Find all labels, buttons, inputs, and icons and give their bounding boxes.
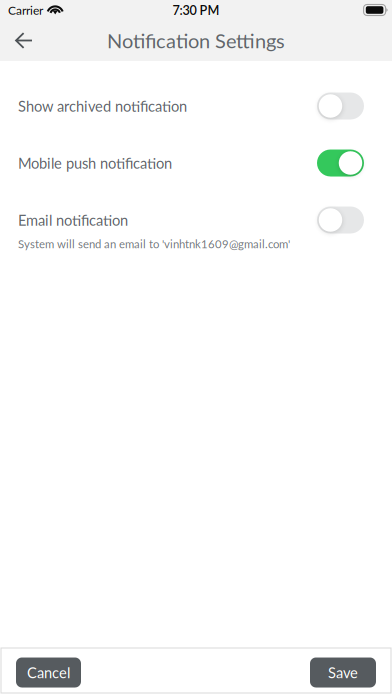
staticText: 7:30 PM: [172, 2, 219, 18]
staticText: Mobile push notification: [18, 154, 172, 172]
button[interactable]: Back: [0, 20, 45, 61]
button[interactable]: Save: [310, 657, 376, 687]
button[interactable]: Mobile push notification: [18, 149, 364, 177]
staticText: Notification Settings: [107, 28, 285, 52]
staticText: Cancel: [27, 664, 70, 681]
staticText: Show archived notification: [18, 97, 187, 115]
staticText: Carrier: [8, 3, 43, 17]
button[interactable]: Show archived notification: [18, 92, 364, 120]
staticText: Email notification: [18, 211, 128, 229]
button[interactable]: Cancel: [16, 657, 81, 687]
button[interactable]: Email notification: [18, 206, 364, 234]
staticText: System will send an email to 'vinhtnk160…: [18, 237, 290, 251]
staticText: Save: [328, 664, 358, 681]
